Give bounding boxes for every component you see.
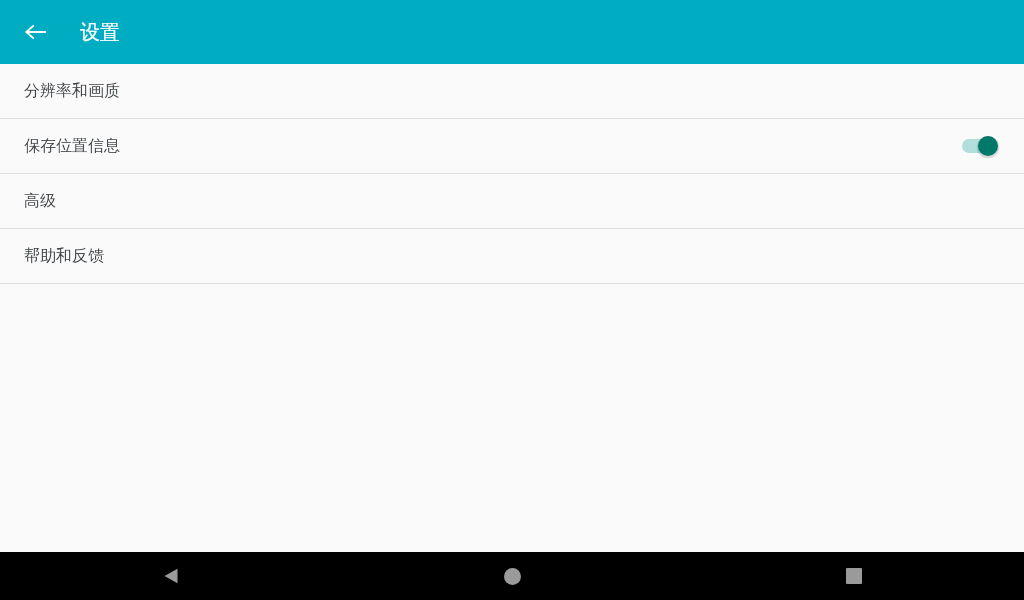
button[interactable]: Back xyxy=(14,10,58,54)
staticText: 保存位置信息 xyxy=(24,136,962,156)
button[interactable]: Recent apps xyxy=(683,552,1024,600)
staticText: 帮助和反馈 xyxy=(24,246,1008,266)
staticText: 设置 xyxy=(80,20,120,45)
button[interactable]: 帮助和反馈 xyxy=(0,229,1024,283)
button[interactable]: 高级 xyxy=(0,174,1024,228)
button[interactable]: 分辨率和画质 xyxy=(0,64,1024,118)
button[interactable]: Back xyxy=(0,552,342,600)
button[interactable]: 保存位置信息 xyxy=(0,119,1024,173)
staticText: 分辨率和画质 xyxy=(24,81,1008,101)
staticText: 高级 xyxy=(24,191,1008,211)
button[interactable]: Home xyxy=(342,552,683,600)
button[interactable]: Save location info toggle xyxy=(962,131,1008,161)
